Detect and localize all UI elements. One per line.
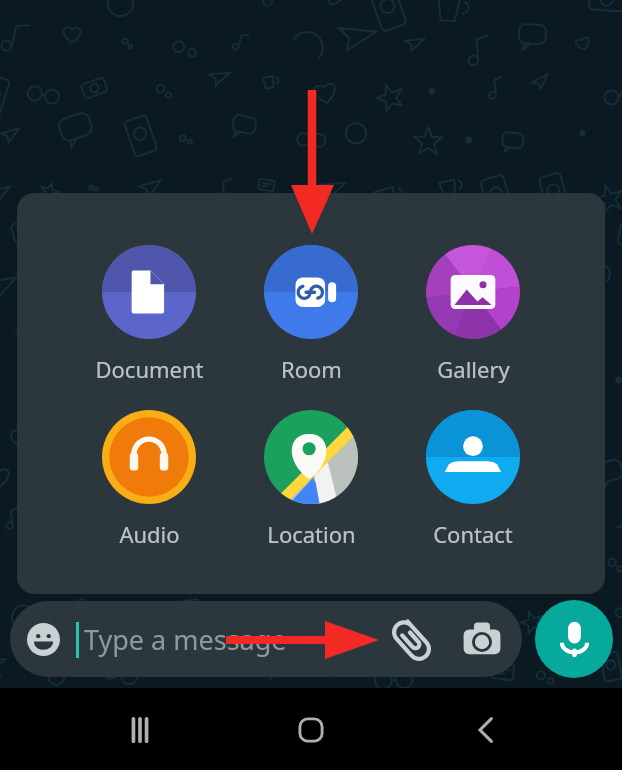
- staticText: Type a message: [84, 621, 287, 658]
- staticText: Gallery: [437, 354, 510, 384]
- button[interactable]: Document: [68, 245, 230, 384]
- button[interactable]: Home: [283, 702, 339, 758]
- button[interactable]: Recents: [112, 702, 168, 758]
- staticText: Audio: [119, 519, 180, 549]
- button[interactable]: Voice message: [535, 600, 613, 678]
- button[interactable]: Gallery: [392, 245, 554, 384]
- button[interactable]: Audio: [68, 410, 230, 549]
- button[interactable]: Back: [458, 702, 514, 758]
- button[interactable]: Camera: [446, 603, 518, 675]
- button[interactable]: Attach: [374, 603, 446, 675]
- button[interactable]: Location: [230, 410, 392, 549]
- staticText: Room: [281, 354, 342, 384]
- staticText: Document: [95, 354, 204, 384]
- button[interactable]: Room: [230, 245, 392, 384]
- staticText: Location: [267, 519, 356, 549]
- staticText: Contact: [433, 519, 513, 549]
- button[interactable]: Emoji: [10, 606, 76, 672]
- button[interactable]: Contact: [392, 410, 554, 549]
